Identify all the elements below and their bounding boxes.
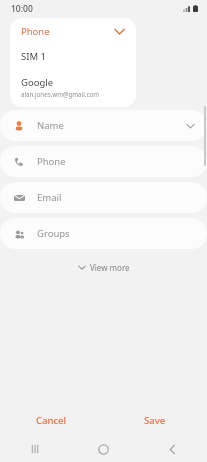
staticText: 10:00 — [11, 3, 33, 15]
staticText: Phone — [21, 25, 50, 38]
staticText: View more — [90, 262, 130, 273]
button[interactable]: Groups — [0, 218, 207, 249]
staticText: alan.jones.wm@gmail.com — [21, 90, 99, 98]
staticText: Phone — [37, 155, 66, 168]
staticText: Name — [37, 119, 64, 132]
button[interactable]: Home — [69, 436, 138, 462]
button[interactable]: Phone — [10, 18, 136, 44]
button[interactable]: Google — [10, 69, 136, 107]
staticText: SIM 1 — [21, 50, 46, 63]
button[interactable]: Recent apps — [0, 436, 69, 462]
staticText: Google — [21, 76, 54, 89]
staticText: Save — [144, 414, 166, 427]
staticText: Groups — [37, 227, 70, 240]
button[interactable]: Phone — [0, 146, 207, 177]
button[interactable]: Cancel — [0, 407, 103, 433]
button[interactable]: Back — [138, 436, 207, 462]
button[interactable]: Name — [0, 110, 207, 141]
button[interactable]: Email — [0, 182, 207, 213]
staticText: Cancel — [36, 414, 67, 427]
button[interactable]: View more — [70, 258, 138, 277]
button[interactable]: Save — [103, 407, 207, 433]
button[interactable]: SIM 1 — [10, 44, 136, 69]
staticText: Email — [37, 191, 62, 204]
